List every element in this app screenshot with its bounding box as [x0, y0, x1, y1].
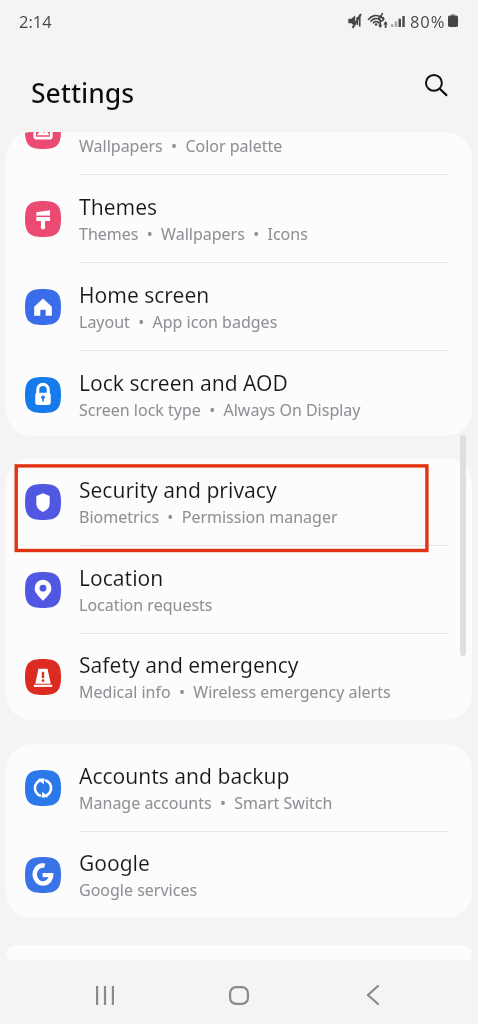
staticText: Screen lock type • Always On Display: [79, 399, 361, 421]
button[interactable]: Accounts and backup: [6, 744, 472, 831]
staticText: Medical info • Wireless emergency alerts: [79, 681, 391, 703]
button[interactable]: Recent apps: [75, 965, 135, 1024]
button[interactable]: Security and privacy: [6, 458, 472, 545]
button[interactable]: Home: [209, 965, 269, 1024]
button[interactable]: Themes: [6, 175, 472, 262]
staticText: Location requests: [79, 594, 213, 616]
button[interactable]: Wallpaper and style: [6, 132, 472, 174]
staticText: Wallpapers • Color palette: [79, 135, 283, 157]
staticText: Google services: [79, 879, 198, 901]
staticText: Settings: [31, 75, 135, 111]
staticText: Google: [79, 849, 150, 878]
button[interactable]: Lock screen and AOD: [6, 351, 472, 436]
button[interactable]: Back: [343, 965, 403, 1024]
staticText: Themes • Wallpapers • Icons: [79, 223, 308, 245]
staticText: Security and privacy: [79, 476, 277, 505]
button[interactable]: Location: [6, 546, 472, 633]
staticText: Themes: [79, 193, 158, 222]
staticText: 80%: [410, 10, 446, 32]
button[interactable]: Safety and emergency: [6, 634, 472, 720]
button[interactable]: Google: [6, 832, 472, 918]
staticText: 2:14: [19, 10, 52, 32]
staticText: Home screen: [79, 281, 210, 310]
staticText: Layout • App icon badges: [79, 311, 278, 333]
button[interactable]: Home screen: [6, 263, 472, 350]
staticText: Lock screen and AOD: [79, 369, 288, 398]
button[interactable]: Search: [414, 63, 458, 107]
staticText: Accounts and backup: [79, 762, 290, 791]
staticText: Safety and emergency: [79, 651, 299, 680]
staticText: Location: [79, 564, 164, 593]
staticText: Biometrics • Permission manager: [79, 506, 338, 528]
staticText: Manage accounts • Smart Switch: [79, 792, 333, 814]
